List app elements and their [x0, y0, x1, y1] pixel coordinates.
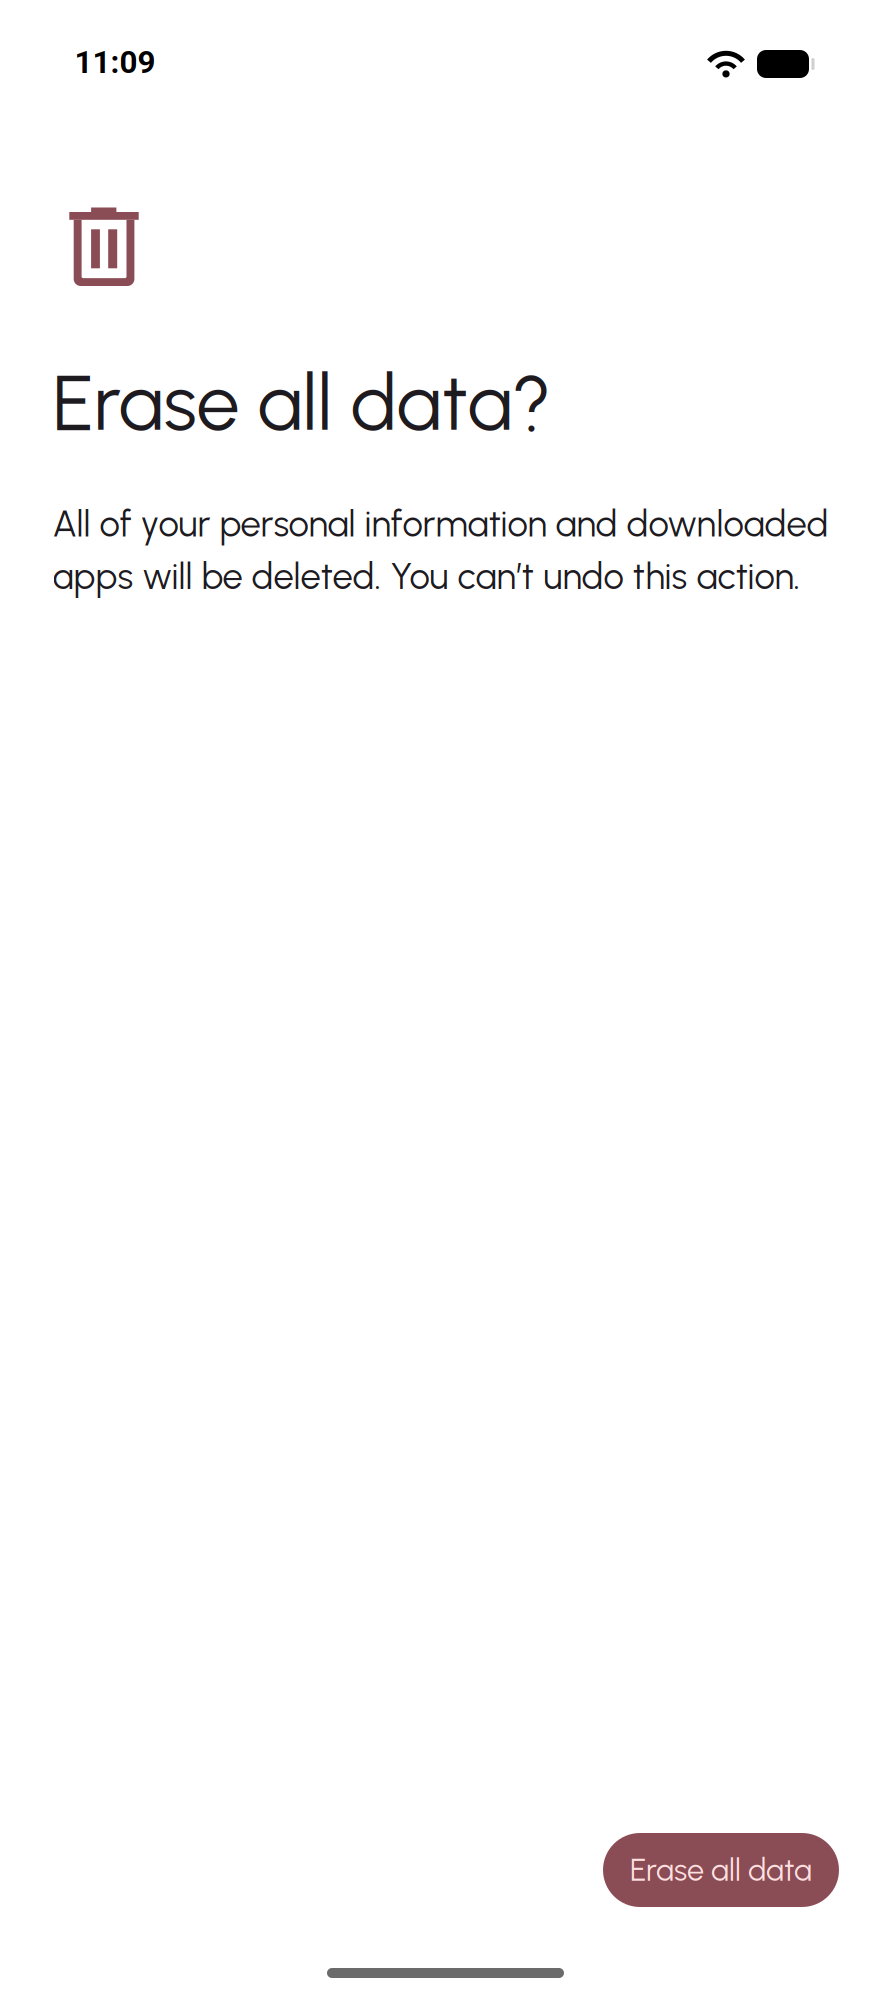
- button[interactable]: Erase all data: [603, 1833, 839, 1907]
- staticText: Erase all data: [630, 1852, 812, 1888]
- staticText: 11:09: [74, 44, 155, 81]
- staticText: Erase all data?: [52, 356, 551, 449]
- staticText: All of your personal information and dow…: [52, 502, 828, 598]
